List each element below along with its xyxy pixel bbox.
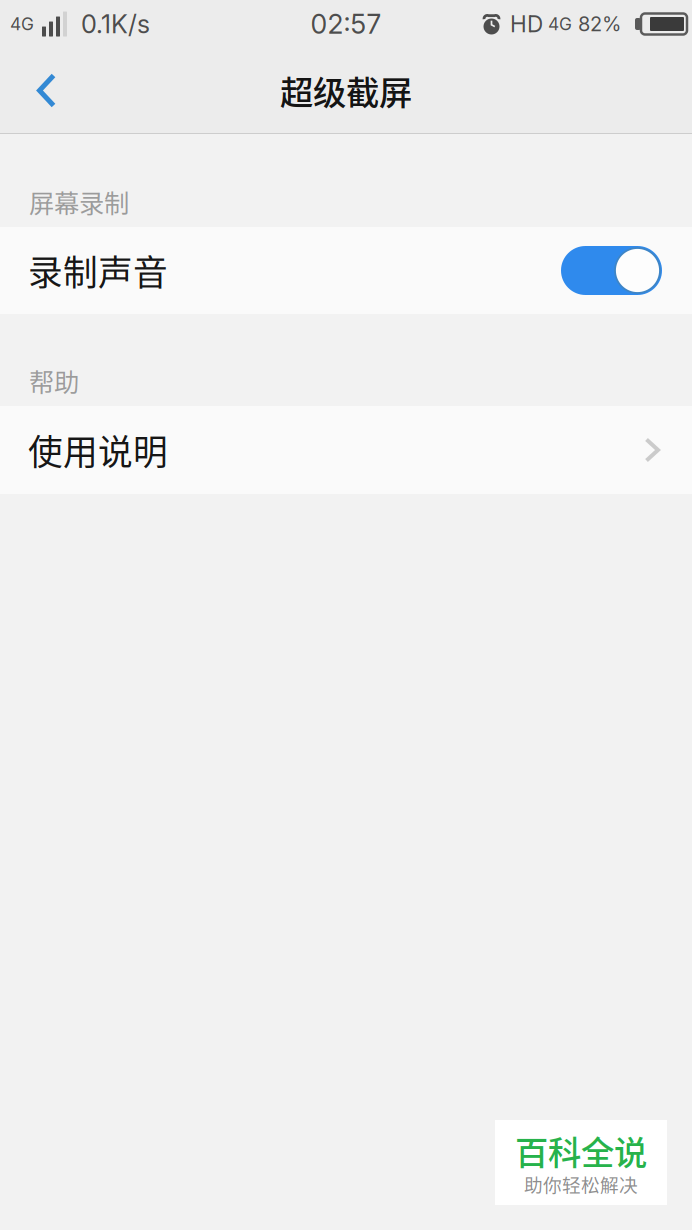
staticText: HD bbox=[510, 10, 543, 38]
staticText: 助你轻松解决 bbox=[524, 1170, 638, 1197]
staticText: 屏幕录制 bbox=[29, 183, 129, 220]
staticText: 4G bbox=[548, 13, 572, 34]
staticText: 百科全说 bbox=[515, 1126, 647, 1175]
staticText: 使用说明 bbox=[28, 425, 168, 475]
staticText: 录制声音 bbox=[28, 245, 168, 296]
button[interactable]: 使用说明 bbox=[0, 406, 692, 494]
button[interactable]: 录制声音 bbox=[0, 227, 692, 314]
staticText: 0.1K/s bbox=[81, 9, 150, 39]
staticText: 82% bbox=[578, 12, 621, 36]
staticText: 超级截屏 bbox=[280, 66, 412, 115]
button[interactable]: Back bbox=[0, 48, 82, 133]
staticText: 4G bbox=[10, 13, 34, 34]
staticText: 02:57 bbox=[310, 8, 381, 40]
staticText: 帮助 bbox=[29, 362, 79, 399]
